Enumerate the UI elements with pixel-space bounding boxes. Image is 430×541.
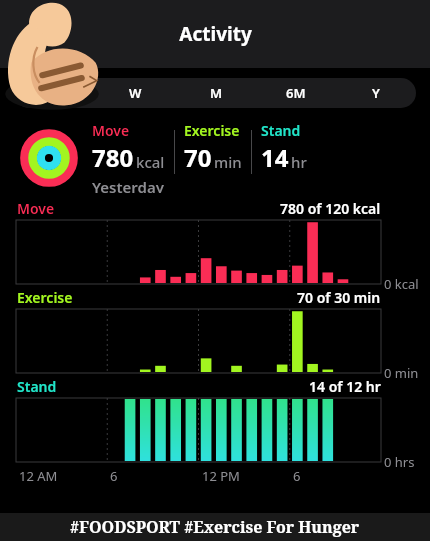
staticText: 6	[293, 467, 301, 485]
staticText: Yesterday	[92, 177, 164, 193]
staticText: #FOODSPORT #Exercise For Hunger	[70, 516, 360, 538]
staticText: M	[210, 84, 223, 102]
button[interactable]: 6M	[256, 78, 336, 108]
staticText: Stand	[261, 121, 301, 140]
staticText: 0 min	[384, 364, 419, 382]
button[interactable]: D	[14, 78, 95, 108]
staticText: Move	[17, 199, 55, 218]
staticText: Move	[92, 121, 130, 140]
staticText: 6	[110, 467, 118, 485]
button[interactable]: M	[176, 78, 256, 108]
staticText: kcal	[136, 152, 165, 172]
staticText: 12 PM	[202, 467, 240, 485]
staticText: Activity	[179, 21, 252, 47]
staticText: hr	[291, 152, 307, 172]
staticText: Y	[372, 84, 380, 102]
staticText: 70	[184, 141, 212, 174]
staticText: 0 kcal	[384, 275, 419, 293]
button[interactable]: Back	[14, 14, 54, 54]
staticText: D	[50, 84, 60, 102]
button[interactable]: W	[95, 78, 176, 108]
button[interactable]: Y	[336, 78, 416, 108]
staticText: 780 of 120 kcal	[280, 199, 381, 218]
staticText: 14	[261, 141, 289, 174]
staticText: Exercise	[17, 288, 73, 307]
staticText: 14 of 12 hr	[309, 377, 381, 396]
staticText: 6M	[286, 84, 306, 102]
staticText: 780	[92, 141, 134, 174]
staticText: min	[214, 152, 242, 172]
staticText: 70 of 30 min	[297, 288, 381, 307]
staticText: Stand	[17, 377, 57, 396]
staticText: W	[129, 84, 142, 102]
staticText: Exercise	[184, 121, 240, 140]
staticText: 0 hrs	[384, 453, 415, 471]
staticText: 12 AM	[19, 467, 58, 485]
